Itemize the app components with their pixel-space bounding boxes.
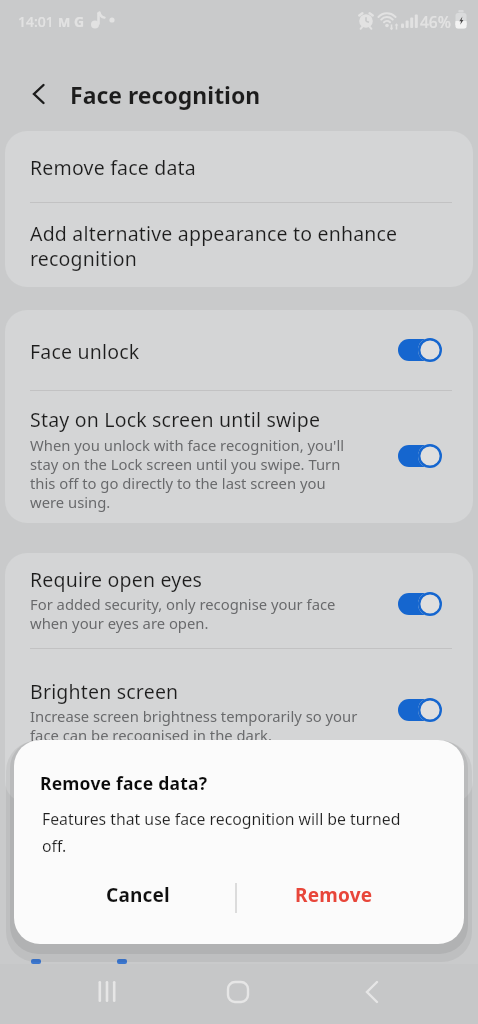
- staticText: Stay on Lock screen until swipe: [30, 406, 321, 433]
- staticText: Require open eyes: [30, 566, 203, 593]
- staticText: 46%: [420, 11, 451, 32]
- button[interactable]: Brighten screen: [5, 649, 473, 803]
- staticText: Add alternative appearance to enhance re…: [30, 220, 398, 272]
- button[interactable]: Require open eyes: [5, 553, 473, 648]
- staticText: When you unlock with face recognition, y…: [30, 435, 345, 512]
- button[interactable]: [18, 74, 60, 114]
- staticText: Brighten screen: [30, 678, 179, 705]
- staticText: Face recognition: [70, 79, 261, 110]
- staticText: G: [74, 12, 85, 31]
- staticText: Face unlock: [30, 338, 140, 365]
- staticText: M: [58, 13, 71, 31]
- button[interactable]: [398, 591, 443, 617]
- staticText: Cancel: [106, 882, 170, 908]
- button[interactable]: Remove face data: [5, 131, 473, 202]
- button[interactable]: [88, 972, 126, 1012]
- button[interactable]: Cancel: [58, 871, 218, 919]
- staticText: 14:01: [18, 12, 54, 31]
- button[interactable]: [352, 972, 392, 1012]
- button[interactable]: Stay on Lock screen until swipe: [5, 391, 473, 523]
- button[interactable]: [398, 337, 443, 363]
- staticText: Remove face data?: [40, 771, 208, 795]
- button[interactable]: Add alternative appearance to enhance re…: [5, 203, 473, 287]
- staticText: For added security, only recognise your …: [30, 594, 336, 633]
- button[interactable]: Remove: [254, 871, 414, 919]
- staticText: Remove: [295, 882, 373, 908]
- staticText: Remove face data: [30, 154, 196, 181]
- staticText: Increase screen brightness temporarily s…: [30, 706, 358, 745]
- button[interactable]: [398, 443, 443, 469]
- button[interactable]: Face unlock: [5, 310, 473, 390]
- button[interactable]: [218, 972, 258, 1012]
- button[interactable]: [398, 697, 443, 723]
- staticText: Features that use face recognition will …: [42, 808, 401, 857]
